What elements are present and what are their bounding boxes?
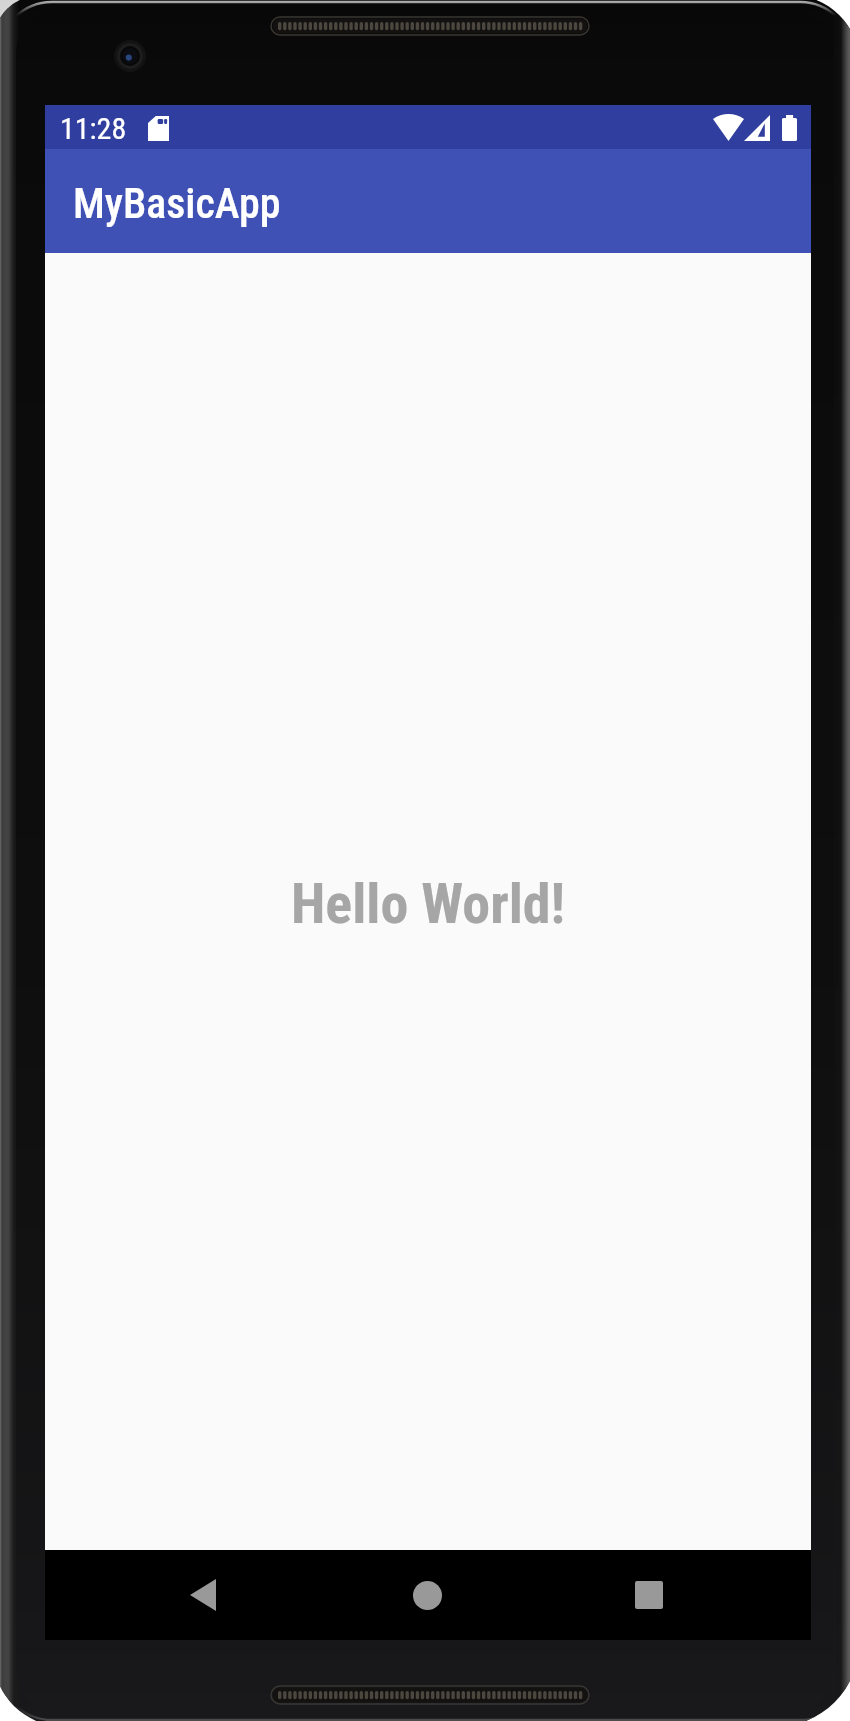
staticText: Hello World! (291, 871, 566, 937)
button[interactable]: MyBasicApp (45, 149, 811, 253)
staticText: MyBasicApp (73, 179, 281, 228)
staticText: 11:28 (60, 111, 127, 146)
button[interactable]: Recent apps (599, 1550, 698, 1640)
button[interactable]: Home (378, 1550, 477, 1640)
button[interactable]: Back (153, 1550, 252, 1640)
